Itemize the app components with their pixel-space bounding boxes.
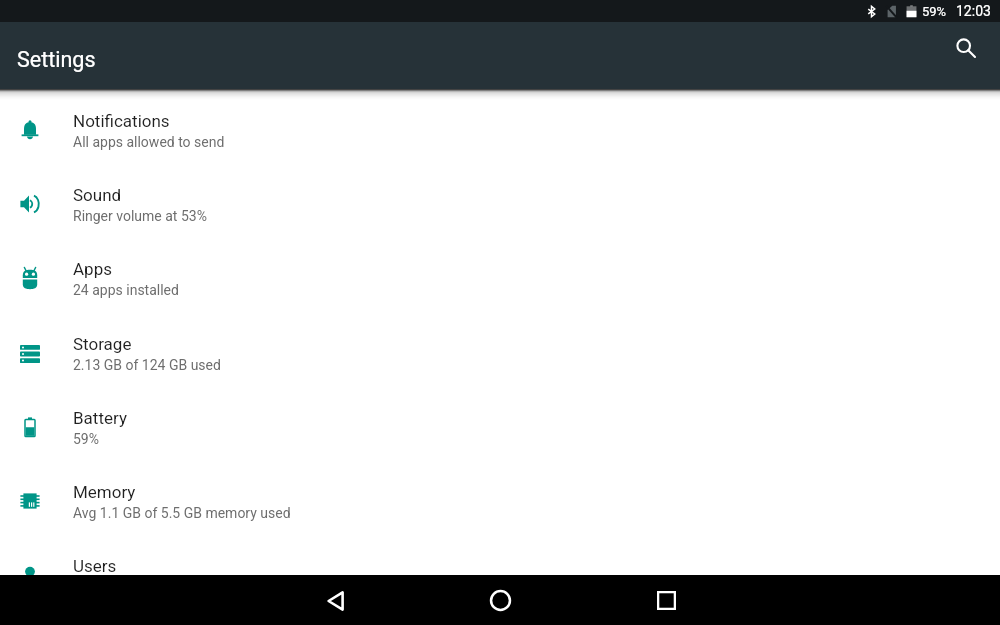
- button[interactable]: Storage: [0, 316, 1000, 390]
- button[interactable]: Apps: [0, 241, 1000, 315]
- staticText: Users: [73, 556, 117, 575]
- button[interactable]: Users: [0, 538, 1000, 575]
- button[interactable]: Search: [943, 25, 989, 71]
- staticText: Apps: [73, 259, 112, 279]
- staticText: All apps allowed to send: [73, 134, 225, 150]
- button[interactable]: Recents: [634, 575, 698, 625]
- staticText: Ringer volume at 53%: [73, 208, 207, 224]
- staticText: Sound: [73, 185, 122, 205]
- staticText: 12:03: [956, 3, 991, 19]
- button[interactable]: Sound: [0, 167, 1000, 241]
- button[interactable]: Back: [304, 576, 368, 625]
- staticText: Avg 1.1 GB of 5.5 GB memory used: [73, 505, 291, 521]
- staticText: Notifications: [73, 111, 170, 131]
- button[interactable]: Memory: [0, 464, 1000, 538]
- staticText: Memory: [73, 482, 136, 502]
- staticText: 59%: [73, 431, 99, 447]
- button[interactable]: Home: [468, 575, 532, 625]
- staticText: 24 apps installed: [73, 282, 179, 298]
- staticText: Battery: [73, 408, 127, 428]
- staticText: 59%: [922, 4, 947, 19]
- staticText: Settings: [17, 47, 96, 72]
- staticText: 2.13 GB of 124 GB used: [73, 357, 221, 373]
- staticText: Storage: [73, 334, 132, 354]
- button[interactable]: Notifications: [0, 93, 1000, 167]
- button[interactable]: Battery: [0, 390, 1000, 464]
